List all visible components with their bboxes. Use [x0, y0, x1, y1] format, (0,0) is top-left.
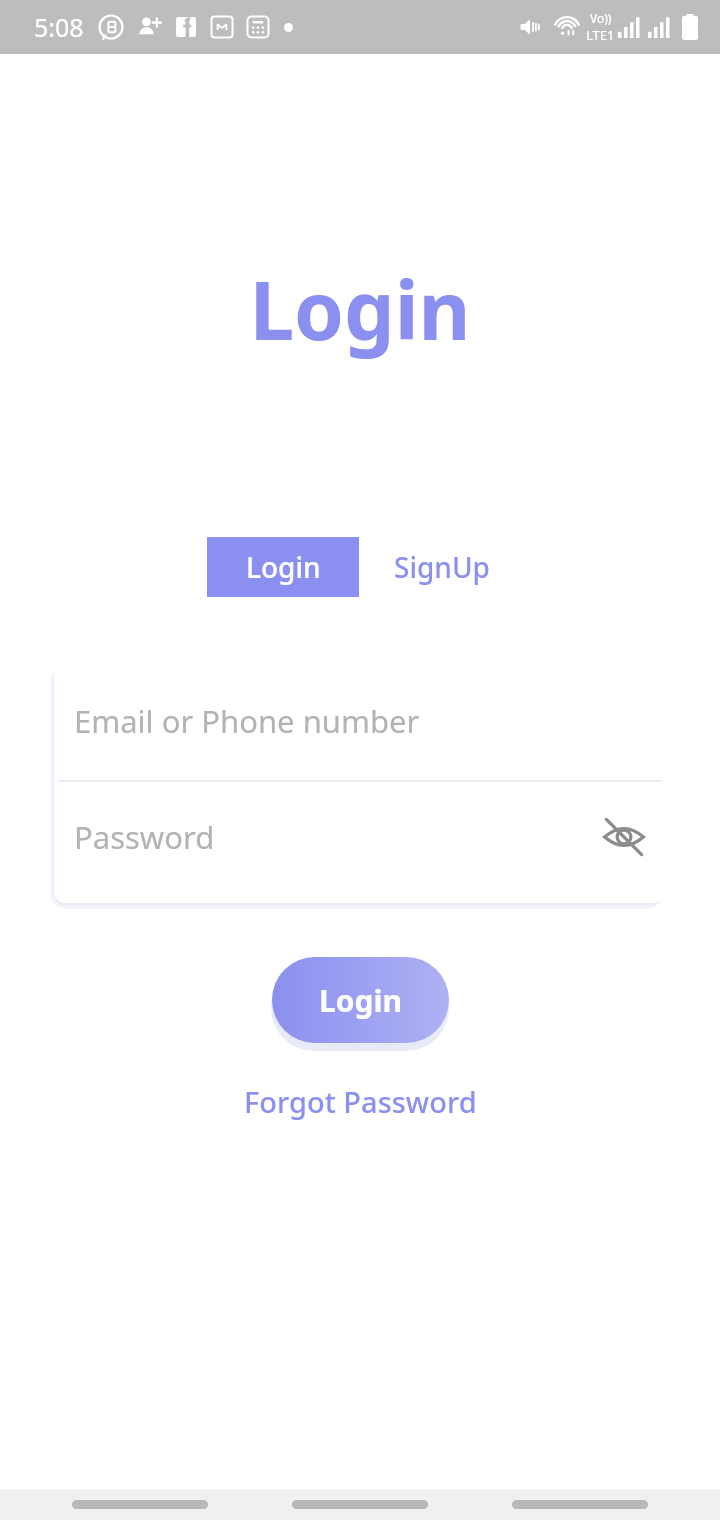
staticText: Forgot Password [244, 1082, 477, 1121]
button[interactable]: Back [72, 1489, 208, 1520]
staticText: LTE1 [586, 26, 615, 44]
button[interactable]: Forgot Password [228, 1074, 493, 1129]
staticText: Password [74, 816, 215, 858]
staticText: Login [0, 254, 720, 363]
button[interactable]: Password [54, 782, 666, 903]
staticText: Login [319, 980, 402, 1021]
button[interactable]: SignUp [359, 537, 525, 597]
staticText: Vo)) [590, 10, 612, 26]
button[interactable]: Email or Phone number [54, 661, 666, 780]
button[interactable]: Login [207, 537, 359, 597]
staticText: Login [246, 548, 321, 586]
staticText: 5:08 [34, 10, 84, 44]
button[interactable]: Show password [596, 809, 652, 865]
button[interactable]: Login [272, 957, 449, 1043]
button[interactable]: Home [292, 1489, 428, 1520]
button[interactable]: Recents [512, 1489, 648, 1520]
staticText: Email or Phone number [74, 700, 420, 742]
staticText: SignUp [394, 548, 490, 586]
